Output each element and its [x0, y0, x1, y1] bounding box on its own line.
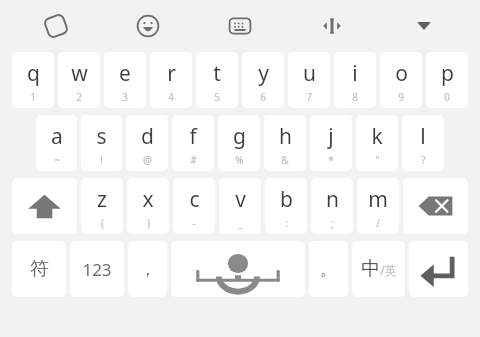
staticText: ?: [421, 153, 426, 167]
button[interactable]: ，: [128, 241, 167, 297]
button[interactable]: Keyboard layout: [218, 6, 262, 46]
staticText: /: [376, 216, 380, 230]
button[interactable]: 123: [70, 241, 124, 297]
staticText: r: [167, 59, 176, 88]
staticText: ;: [331, 216, 334, 230]
button[interactable]: w: [58, 52, 100, 108]
button[interactable]: v: [219, 178, 261, 234]
button[interactable]: Emoji: [126, 6, 170, 46]
button[interactable]: Move cursor: [310, 6, 354, 46]
staticText: d: [141, 122, 154, 151]
button[interactable]: y: [242, 52, 284, 108]
staticText: !: [100, 153, 103, 167]
button[interactable]: Sogou input settings: [34, 6, 78, 46]
staticText: x: [142, 185, 154, 214]
staticText: a: [51, 122, 63, 151]
staticText: ，: [139, 259, 156, 280]
staticText: 中/英: [361, 257, 397, 281]
button[interactable]: s: [81, 115, 122, 171]
staticText: 1: [30, 90, 36, 104]
staticText: y: [258, 59, 269, 88]
button[interactable]: j: [310, 115, 352, 171]
button[interactable]: 符: [12, 241, 66, 297]
button[interactable]: Enter: [409, 241, 468, 297]
button[interactable]: x: [127, 178, 169, 234]
staticText: @: [143, 153, 152, 167]
staticText: o: [395, 59, 408, 88]
button[interactable]: Shift: [12, 178, 77, 234]
staticText: %: [235, 153, 244, 167]
button[interactable]: o: [380, 52, 422, 108]
button[interactable]: i: [334, 52, 376, 108]
button[interactable]: 中/英: [352, 241, 405, 297]
button[interactable]: g: [218, 115, 260, 171]
staticText: -: [192, 216, 196, 230]
button[interactable]: n: [311, 178, 353, 234]
staticText: e: [119, 59, 131, 88]
button[interactable]: a: [36, 115, 77, 171]
staticText: 5: [214, 90, 220, 104]
staticText: m: [368, 185, 388, 214]
staticText: &: [281, 153, 289, 167]
button[interactable]: b: [265, 178, 307, 234]
staticText: f: [189, 122, 197, 151]
staticText: 8: [352, 90, 358, 104]
staticText: g: [233, 122, 246, 151]
staticText: (: [101, 216, 104, 230]
button[interactable]: m: [357, 178, 399, 234]
button[interactable]: 。: [309, 241, 348, 297]
button[interactable]: z: [81, 178, 123, 234]
button[interactable]: Hide keyboard: [402, 6, 446, 46]
staticText: u: [303, 59, 316, 88]
staticText: _: [238, 216, 243, 230]
staticText: k: [371, 122, 383, 151]
staticText: l: [420, 122, 426, 151]
button[interactable]: k: [356, 115, 398, 171]
button[interactable]: d: [126, 115, 168, 171]
staticText: 0: [444, 90, 450, 104]
button[interactable]: Backspace: [403, 178, 468, 234]
staticText: p: [441, 59, 454, 88]
button[interactable]: q: [12, 52, 54, 108]
button[interactable]: p: [426, 52, 468, 108]
staticText: 3: [122, 90, 128, 104]
staticText: ): [147, 216, 150, 230]
staticText: t: [213, 59, 221, 88]
button[interactable]: Space: [171, 241, 305, 297]
staticText: n: [326, 185, 339, 214]
button[interactable]: h: [264, 115, 306, 171]
staticText: *: [328, 153, 334, 167]
staticText: s: [96, 122, 107, 151]
button[interactable]: e: [104, 52, 146, 108]
button[interactable]: l: [402, 115, 444, 171]
staticText: b: [280, 185, 293, 214]
staticText: i: [352, 59, 358, 88]
staticText: z: [97, 185, 107, 214]
staticText: q: [27, 59, 40, 88]
button[interactable]: c: [173, 178, 215, 234]
staticText: ": [375, 153, 380, 167]
button[interactable]: t: [196, 52, 238, 108]
staticText: 6: [260, 90, 266, 104]
staticText: j: [328, 122, 334, 151]
staticText: 9: [398, 90, 404, 104]
staticText: 符: [30, 257, 49, 281]
staticText: #: [190, 153, 197, 167]
staticText: h: [279, 122, 292, 151]
staticText: w: [71, 59, 88, 88]
staticText: 123: [82, 258, 112, 281]
staticText: 7: [306, 90, 312, 104]
button[interactable]: u: [288, 52, 330, 108]
staticText: 。: [320, 259, 337, 280]
button[interactable]: f: [172, 115, 214, 171]
staticText: c: [189, 185, 200, 214]
staticText: ~: [54, 153, 60, 167]
button[interactable]: r: [150, 52, 192, 108]
staticText: 4: [168, 90, 174, 104]
staticText: v: [235, 185, 246, 214]
staticText: 2: [76, 90, 82, 104]
staticText: :: [285, 216, 288, 230]
